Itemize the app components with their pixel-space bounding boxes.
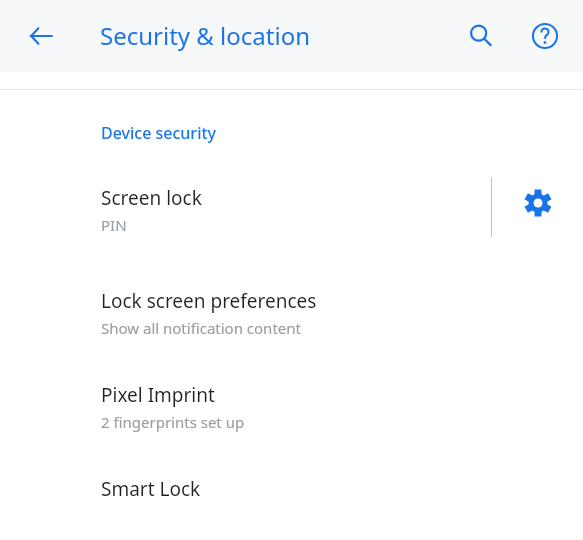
staticText: Lock screen preferences bbox=[101, 288, 317, 314]
staticText: 2 fingerprints set up bbox=[101, 412, 245, 432]
button[interactable]: Lock screen preferences bbox=[0, 288, 583, 338]
staticText: Security & location bbox=[100, 19, 311, 52]
button[interactable]: Help bbox=[523, 14, 567, 58]
button[interactable]: Device security bbox=[0, 122, 237, 144]
staticText: Pixel Imprint bbox=[101, 382, 215, 408]
button[interactable]: Smart Lock bbox=[0, 476, 583, 502]
button[interactable]: Back bbox=[19, 14, 63, 58]
button[interactable]: Search bbox=[459, 14, 503, 58]
staticText: Smart Lock bbox=[101, 476, 201, 502]
staticText: Screen lock bbox=[101, 185, 202, 211]
button[interactable]: Pixel Imprint bbox=[0, 382, 583, 432]
button[interactable]: Screen lock settings bbox=[492, 174, 583, 232]
staticText: Show all notification content bbox=[101, 318, 301, 338]
staticText: Device security bbox=[101, 122, 217, 144]
button[interactable]: Screen lock bbox=[0, 185, 491, 235]
staticText: PIN bbox=[101, 215, 127, 235]
